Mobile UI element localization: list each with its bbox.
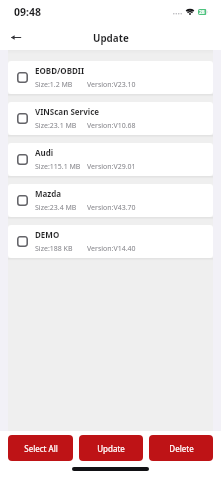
- staticText: DEMO: [35, 229, 60, 240]
- button[interactable]: Audi: [8, 143, 213, 176]
- staticText: Size:23.4 MB: [35, 203, 87, 213]
- staticText: Version:V29.01: [87, 162, 136, 172]
- button[interactable]: Back: [0, 22, 31, 50]
- staticText: Version:V14.40: [87, 244, 136, 254]
- staticText: Select All: [24, 443, 58, 454]
- staticText: Size:115.1 MB: [35, 162, 87, 172]
- staticText: Version:V43.70: [87, 203, 136, 213]
- button[interactable]: DEMO: [8, 225, 213, 258]
- staticText: 28: [199, 9, 205, 15]
- staticText: EOBD/OBDII: [35, 65, 85, 76]
- button[interactable]: Mazda: [8, 184, 213, 217]
- staticText: Size:23.1 MB: [35, 121, 87, 131]
- button[interactable]: Update: [79, 435, 143, 461]
- staticText: Size:1.2 MB: [35, 80, 87, 90]
- staticText: Update: [97, 443, 125, 454]
- staticText: Version:V23.10: [87, 80, 136, 90]
- button[interactable]: Delete: [149, 435, 213, 461]
- staticText: Version:V10.68: [87, 121, 136, 131]
- button[interactable]: EOBD/OBDII: [8, 61, 213, 94]
- staticText: 09:48: [14, 5, 41, 19]
- staticText: Mazda: [35, 188, 62, 199]
- button[interactable]: Select All: [8, 435, 73, 461]
- staticText: Delete: [169, 443, 194, 454]
- button[interactable]: VINScan Service: [8, 102, 213, 135]
- staticText: Size:188 KB: [35, 244, 87, 254]
- staticText: Audi: [35, 147, 54, 158]
- staticText: VINScan Service: [35, 106, 100, 117]
- staticText: Update: [93, 32, 129, 45]
